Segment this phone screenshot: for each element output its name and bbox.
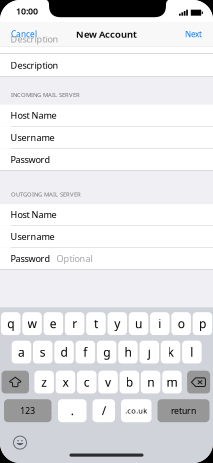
staticText: return — [171, 405, 196, 417]
staticText: f — [83, 344, 87, 360]
staticText: s — [40, 344, 46, 360]
staticText: Next — [185, 28, 202, 40]
staticText: t — [94, 315, 98, 332]
button[interactable]: t — [86, 312, 106, 335]
staticText: p — [199, 315, 206, 332]
staticText: n — [147, 374, 154, 390]
staticText: c — [84, 374, 90, 390]
button[interactable]: Host Name — [0, 105, 213, 126]
staticText: l — [190, 344, 193, 360]
button[interactable]: q — [1, 312, 20, 335]
staticText: . — [71, 402, 74, 419]
staticText: e — [50, 315, 57, 332]
button[interactable]: p — [193, 312, 212, 335]
button[interactable]: u — [129, 312, 148, 335]
staticText: m — [166, 374, 177, 390]
button[interactable]: Password — [0, 248, 213, 269]
button[interactable]: Username — [0, 127, 213, 148]
button[interactable]: x — [56, 371, 75, 394]
button[interactable]: l — [182, 341, 202, 364]
staticText: New Account — [76, 28, 137, 40]
staticText: Cancel — [11, 28, 37, 40]
button[interactable]: y — [107, 312, 127, 335]
button[interactable]: n — [141, 371, 160, 394]
button[interactable]: s — [33, 341, 52, 364]
staticText: v — [105, 374, 111, 390]
staticText: Host Name — [11, 208, 57, 221]
button[interactable]: k — [161, 341, 180, 364]
button[interactable]: Cancel — [0, 22, 51, 46]
staticText: d — [60, 344, 67, 360]
staticText: x — [62, 374, 68, 390]
button[interactable]: m — [162, 371, 182, 394]
button[interactable]: a — [12, 341, 31, 364]
staticText: y — [114, 315, 120, 332]
button[interactable]: Host Name — [0, 204, 213, 225]
staticText: Host Name — [11, 109, 57, 121]
button[interactable]: w — [22, 312, 42, 335]
button[interactable]: h — [118, 341, 138, 364]
button[interactable]: Password — [0, 149, 213, 170]
staticText: k — [167, 344, 173, 360]
button[interactable]: c — [77, 371, 96, 394]
button[interactable]: Emoji keyboard — [12, 435, 28, 451]
staticText: a — [18, 344, 25, 360]
staticText: o — [178, 315, 185, 332]
button[interactable]: Next — [164, 22, 202, 46]
staticText: Username — [11, 131, 55, 143]
button[interactable]: z — [34, 371, 54, 394]
button[interactable]: d — [54, 341, 74, 364]
button[interactable]: e — [44, 312, 63, 335]
button[interactable]: v — [98, 371, 118, 394]
staticText: i — [158, 315, 161, 332]
staticText: r — [72, 315, 77, 332]
staticText: j — [148, 344, 151, 360]
staticText: b — [126, 374, 133, 390]
staticText: / — [102, 402, 106, 419]
staticText: w — [28, 315, 37, 332]
button[interactable]: / — [92, 399, 115, 422]
staticText: Optional — [57, 252, 93, 264]
staticText: q — [7, 315, 14, 332]
staticText: z — [41, 374, 47, 390]
button[interactable]: . — [58, 399, 86, 422]
button[interactable]: Username — [0, 226, 213, 247]
staticText: u — [135, 315, 142, 332]
button[interactable]: o — [171, 312, 191, 335]
staticText: 123 — [20, 405, 35, 416]
button[interactable]: j — [139, 341, 159, 364]
button[interactable]: Shift — [1, 371, 29, 394]
staticText: g — [103, 344, 110, 360]
button[interactable]: .co.uk — [121, 399, 151, 422]
staticText: OUTGOING MAIL SERVER — [11, 190, 81, 198]
staticText: Password — [11, 252, 51, 264]
staticText: 10:00 — [16, 5, 38, 17]
staticText: .co.uk — [125, 406, 147, 416]
staticText: Username — [11, 230, 55, 242]
button[interactable]: b — [120, 371, 139, 394]
staticText: Description — [11, 59, 59, 71]
button[interactable]: i — [150, 312, 170, 335]
staticText: INCOMING MAIL SERVER — [11, 91, 80, 99]
button[interactable]: r — [65, 312, 84, 335]
button[interactable]: Description — [0, 54, 213, 76]
button[interactable]: g — [97, 341, 116, 364]
button[interactable]: 123 — [4, 399, 51, 422]
staticText: Password — [11, 153, 51, 165]
staticText: Description — [11, 33, 59, 45]
button[interactable]: Delete — [187, 371, 210, 394]
button[interactable]: f — [76, 341, 95, 364]
staticText: h — [124, 344, 131, 360]
button[interactable]: return — [157, 399, 209, 422]
